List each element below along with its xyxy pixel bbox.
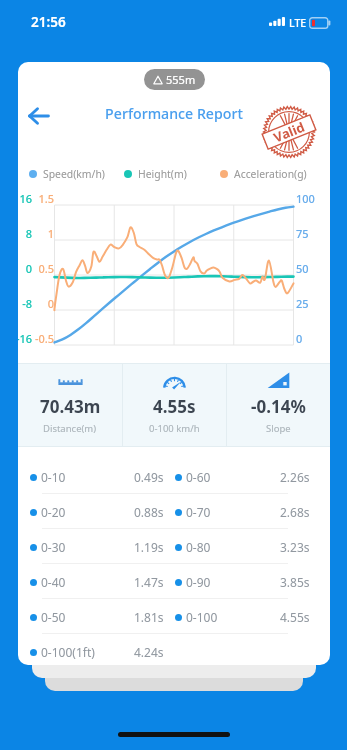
staticText: 0.5 xyxy=(34,261,54,276)
staticText: 50 xyxy=(296,261,330,276)
staticText: 0-40 xyxy=(41,574,66,590)
staticText: 4.55s xyxy=(153,395,196,418)
button[interactable]: 4.55s xyxy=(123,363,226,447)
staticText: 0-50 xyxy=(41,609,66,625)
staticText: 0.49s xyxy=(134,469,164,485)
staticText: Height(m) xyxy=(138,167,187,181)
staticText: 0-100(1ft) xyxy=(41,644,95,660)
staticText: 0-30 xyxy=(41,539,66,555)
staticText: 1.47s xyxy=(134,574,164,590)
button[interactable]: Acceleration(g) xyxy=(220,167,307,181)
staticText: 75 xyxy=(296,226,330,241)
staticText: 1.81s xyxy=(134,609,164,625)
staticText: 0-100 km/h xyxy=(149,422,200,435)
staticText: 0-60 xyxy=(186,469,211,485)
staticText: Distance(m) xyxy=(43,422,97,435)
button[interactable]: 0-10 xyxy=(18,459,330,494)
staticText: 21:56 xyxy=(31,13,66,31)
staticText: -16 xyxy=(18,331,32,346)
button[interactable]: 0-30 xyxy=(18,529,330,564)
staticText: 4.24s xyxy=(134,644,164,660)
button[interactable]: 0-100(1ft) xyxy=(18,634,330,665)
staticText: 0 xyxy=(34,296,54,311)
button[interactable]: -0.14% xyxy=(227,363,330,447)
staticText: 0-20 xyxy=(41,504,66,520)
staticText: 3.23s xyxy=(280,539,310,555)
staticText: 0-70 xyxy=(186,504,211,520)
button[interactable]: 0-40 xyxy=(18,564,330,599)
staticText: 0-100 xyxy=(186,609,218,625)
button[interactable]: Back xyxy=(19,96,59,136)
staticText: 4.55s xyxy=(280,609,310,625)
staticText: 3.85s xyxy=(280,574,310,590)
staticText: -0.5 xyxy=(34,331,54,346)
staticText: 70.43m xyxy=(40,395,101,418)
staticText: 2.68s xyxy=(280,504,310,520)
button[interactable]: Speed(km/h) xyxy=(29,167,105,181)
staticText: Valid xyxy=(271,118,307,146)
staticText: Performance Report xyxy=(18,104,330,123)
staticText: 8 xyxy=(18,226,32,241)
staticText: 16 xyxy=(18,191,32,206)
staticText: 1.19s xyxy=(134,539,164,555)
staticText: 25 xyxy=(296,296,330,311)
staticText: 555m xyxy=(166,72,196,87)
staticText: 0 xyxy=(296,331,330,346)
button[interactable]: 555m xyxy=(144,69,205,90)
button[interactable]: 0-50 xyxy=(18,599,330,634)
staticText: 0.88s xyxy=(134,504,164,520)
staticText: -0.14% xyxy=(251,395,306,418)
staticText: Speed(km/h) xyxy=(43,167,105,181)
button[interactable]: 0-20 xyxy=(18,494,330,529)
staticText: Acceleration(g) xyxy=(234,167,307,181)
staticText: 0-10 xyxy=(41,469,66,485)
staticText: -8 xyxy=(18,296,32,311)
staticText: 0-80 xyxy=(186,539,211,555)
button[interactable]: 70.43m xyxy=(18,363,122,447)
staticText: 1.5 xyxy=(34,191,54,206)
staticText: LTE xyxy=(289,16,307,30)
staticText: 1 xyxy=(34,226,54,241)
staticText: Slope xyxy=(266,422,291,435)
staticText: 100 xyxy=(296,191,330,206)
staticText: 0-90 xyxy=(186,574,211,590)
button[interactable]: Height(m) xyxy=(124,167,187,181)
staticText: 2.26s xyxy=(280,469,310,485)
staticText: 0 xyxy=(18,261,32,276)
